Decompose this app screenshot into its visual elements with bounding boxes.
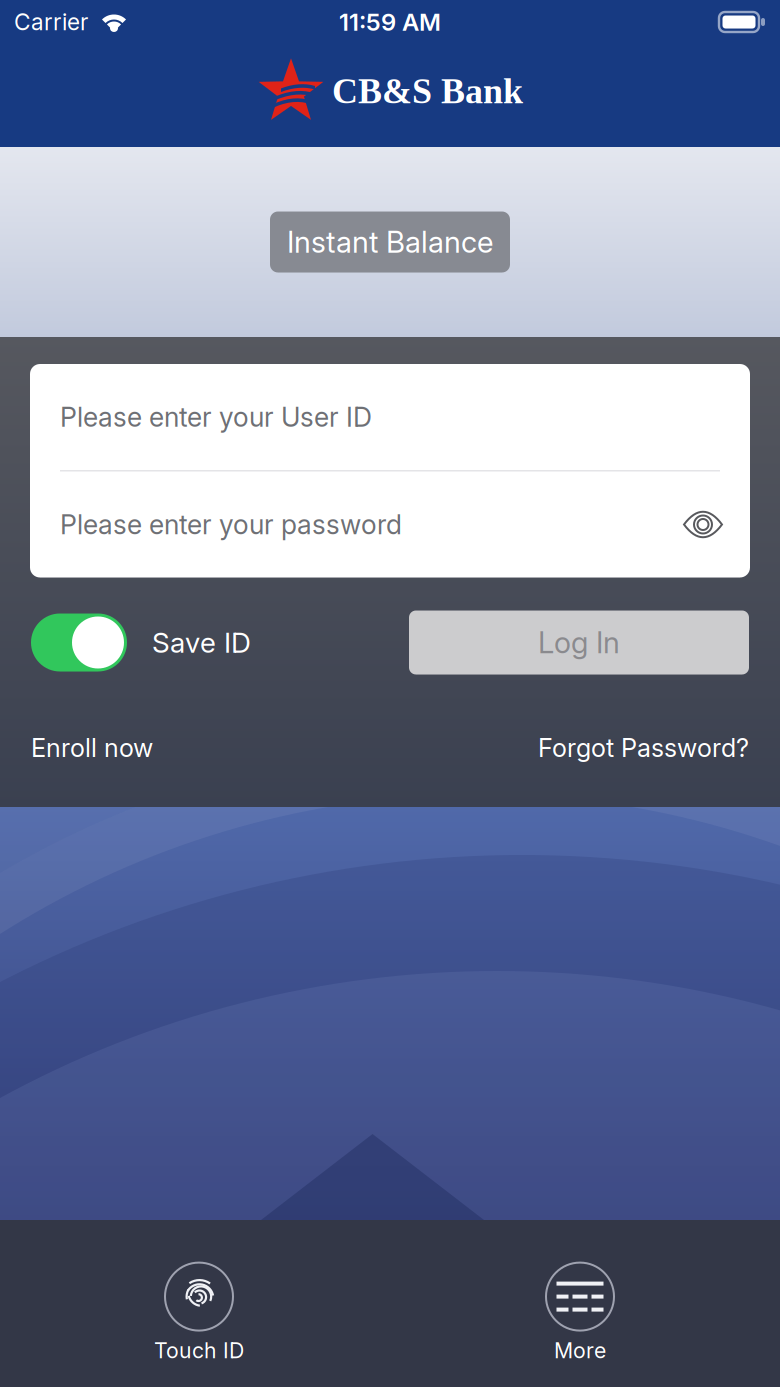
staticText: 11:59 AM <box>339 7 441 36</box>
staticText: Touch ID <box>154 1338 244 1363</box>
button[interactable]: Log In <box>409 610 749 674</box>
button[interactable]: Forgot Password? <box>538 732 749 763</box>
button[interactable]: Show password <box>682 509 724 539</box>
staticText: CB&S Bank <box>332 71 523 111</box>
staticText: Enroll now <box>31 732 153 763</box>
button[interactable]: Enroll now <box>31 732 153 763</box>
staticText: Please enter your User ID <box>60 401 372 433</box>
button[interactable]: More <box>500 1263 660 1363</box>
staticText: More <box>554 1338 606 1363</box>
button[interactable]: Touch ID <box>119 1263 279 1363</box>
button[interactable]: Save ID <box>31 613 251 671</box>
staticText: Instant Balance <box>287 224 493 260</box>
staticText: Carrier <box>14 8 88 36</box>
staticText: Save ID <box>152 626 251 659</box>
staticText: Forgot Password? <box>538 732 749 763</box>
staticText: Please enter your password <box>60 508 402 541</box>
staticText: Log In <box>538 625 620 660</box>
button[interactable]: Instant Balance <box>270 211 510 272</box>
